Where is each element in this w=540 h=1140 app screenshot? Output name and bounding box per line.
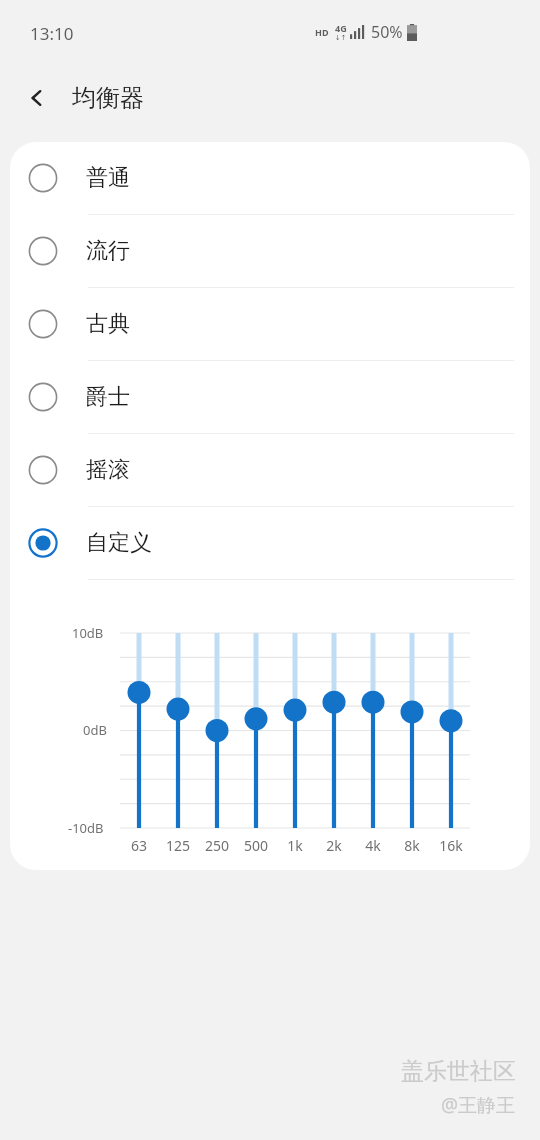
- staticText: @王静王: [441, 1092, 516, 1118]
- button[interactable]: 古典: [10, 288, 530, 360]
- staticText: 16k: [431, 836, 471, 855]
- staticText: 流行: [86, 237, 130, 265]
- staticText: 50%: [371, 21, 403, 43]
- staticText: 500: [236, 836, 276, 855]
- button[interactable]: 爵士: [10, 361, 530, 433]
- staticText: 摇滚: [86, 456, 130, 484]
- staticText: 4G: [335, 22, 347, 34]
- staticText: 63: [119, 836, 159, 855]
- staticText: 13:10: [30, 22, 74, 45]
- button[interactable]: 自定义: [10, 507, 530, 579]
- staticText: 0dB: [83, 721, 107, 739]
- staticText: 爵士: [86, 383, 130, 411]
- staticText: 250: [197, 836, 237, 855]
- button[interactable]: 流行: [10, 215, 530, 287]
- button[interactable]: 摇滚: [10, 434, 530, 506]
- staticText: 1k: [275, 836, 315, 855]
- staticText: ↓↑: [335, 34, 347, 42]
- staticText: 125: [158, 836, 198, 855]
- staticText: 盖乐世社区: [401, 1057, 516, 1086]
- staticText: 自定义: [86, 529, 152, 557]
- staticText: 均衡器: [72, 83, 144, 113]
- staticText: 古典: [86, 310, 130, 338]
- staticText: 普通: [86, 164, 130, 192]
- staticText: HD: [315, 26, 329, 38]
- staticText: 4k: [353, 836, 393, 855]
- staticText: 10dB: [72, 624, 104, 642]
- staticText: -10dB: [68, 819, 104, 837]
- button[interactable]: Back: [18, 79, 56, 117]
- staticText: 2k: [314, 836, 354, 855]
- staticText: 8k: [392, 836, 432, 855]
- button[interactable]: 普通: [10, 142, 530, 214]
